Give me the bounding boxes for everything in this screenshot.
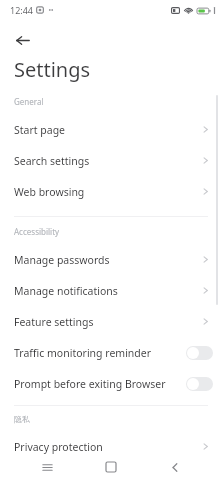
button[interactable]: Manage passwords	[0, 244, 222, 275]
staticText: Start page	[14, 123, 201, 137]
staticText: Accessibility	[14, 226, 60, 237]
button[interactable]: Back	[10, 28, 34, 52]
button[interactable]: Home	[98, 454, 124, 480]
staticText: Privacy protection	[14, 440, 201, 454]
button[interactable]: Prompt before exiting Browser	[0, 368, 222, 399]
staticText: Settings	[14, 56, 91, 83]
staticText: General	[14, 96, 44, 107]
staticText: Traffic monitoring reminder	[14, 346, 186, 360]
button[interactable]: Traffic monitoring reminder	[0, 337, 222, 368]
staticText: Feature settings	[14, 315, 201, 329]
staticText: Manage passwords	[14, 253, 201, 267]
staticText: 12:44	[10, 4, 34, 16]
button[interactable]: Feature settings	[0, 306, 222, 337]
button[interactable]: Web browsing	[0, 176, 222, 207]
button[interactable]: Back	[162, 454, 188, 480]
staticText: Prompt before exiting Browser	[14, 377, 186, 391]
button[interactable]: Recent apps	[34, 454, 60, 480]
staticText: Manage notifications	[14, 284, 201, 298]
button[interactable]: Start page	[0, 114, 222, 145]
staticText: Web browsing	[14, 185, 201, 199]
staticText: Search settings	[14, 154, 201, 168]
button[interactable]: Manage notifications	[0, 275, 222, 306]
button[interactable]: Privacy protection	[0, 431, 222, 462]
staticText: 隐私	[14, 414, 30, 424]
button[interactable]: Search settings	[0, 145, 222, 176]
